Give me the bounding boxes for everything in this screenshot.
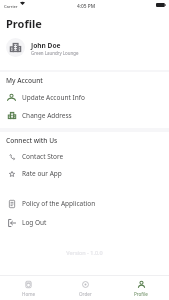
staticText: Rate our App	[22, 169, 62, 178]
button[interactable]: Order	[57, 276, 113, 300]
button[interactable]: Update Account Info	[0, 88, 169, 106]
staticText: Log Out	[22, 218, 47, 227]
staticText: Update Account Info	[22, 93, 85, 102]
staticText: Connect with Us	[6, 136, 58, 145]
staticText: My Account	[6, 76, 43, 85]
staticText: Contact Store	[22, 152, 64, 161]
staticText: Policy of the Application	[22, 199, 96, 208]
button[interactable]: Home	[0, 276, 57, 300]
staticText: Version - 1.0.0	[0, 249, 169, 256]
button[interactable]: Log Out	[0, 213, 169, 231]
staticText: Green Laundry Lounge	[31, 50, 79, 56]
button[interactable]: Profile	[113, 276, 169, 300]
staticText: 4:05 PM	[77, 3, 96, 10]
staticText: Order	[79, 291, 92, 297]
staticText: Change Address	[22, 111, 72, 120]
staticText: John Doe	[31, 41, 61, 50]
button[interactable]: Rate our App	[0, 164, 169, 182]
staticText: Profile	[6, 16, 42, 31]
button[interactable]: Policy of the Application	[0, 194, 169, 212]
staticText: Carrier	[4, 4, 18, 10]
button[interactable]: Change Address	[0, 106, 169, 124]
button[interactable]: Contact Store	[0, 147, 169, 165]
staticText: Home	[22, 291, 36, 297]
button[interactable]: John Doe	[0, 30, 169, 70]
staticText: Profile	[134, 291, 148, 297]
